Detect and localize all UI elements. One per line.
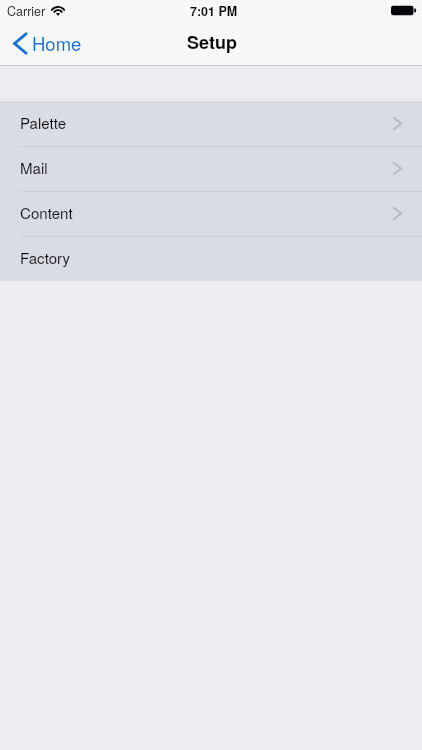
other: Battery full [391, 5, 416, 16]
staticText: Home [32, 30, 82, 56]
other: Wi-Fi signal [51, 6, 65, 16]
staticText: Mail [20, 157, 48, 179]
staticText: Carrier [7, 2, 46, 20]
button[interactable]: Home [0, 24, 92, 62]
button[interactable]: Factory [0, 236, 422, 281]
button[interactable]: Palette [0, 101, 422, 146]
staticText: Setup [187, 29, 237, 55]
staticText: 7:01 PM [190, 2, 238, 20]
staticText: Factory [20, 247, 71, 269]
button[interactable]: Mail [0, 146, 422, 191]
button[interactable]: Content [0, 191, 422, 236]
staticText: Palette [20, 112, 67, 134]
staticText: Content [20, 202, 73, 224]
